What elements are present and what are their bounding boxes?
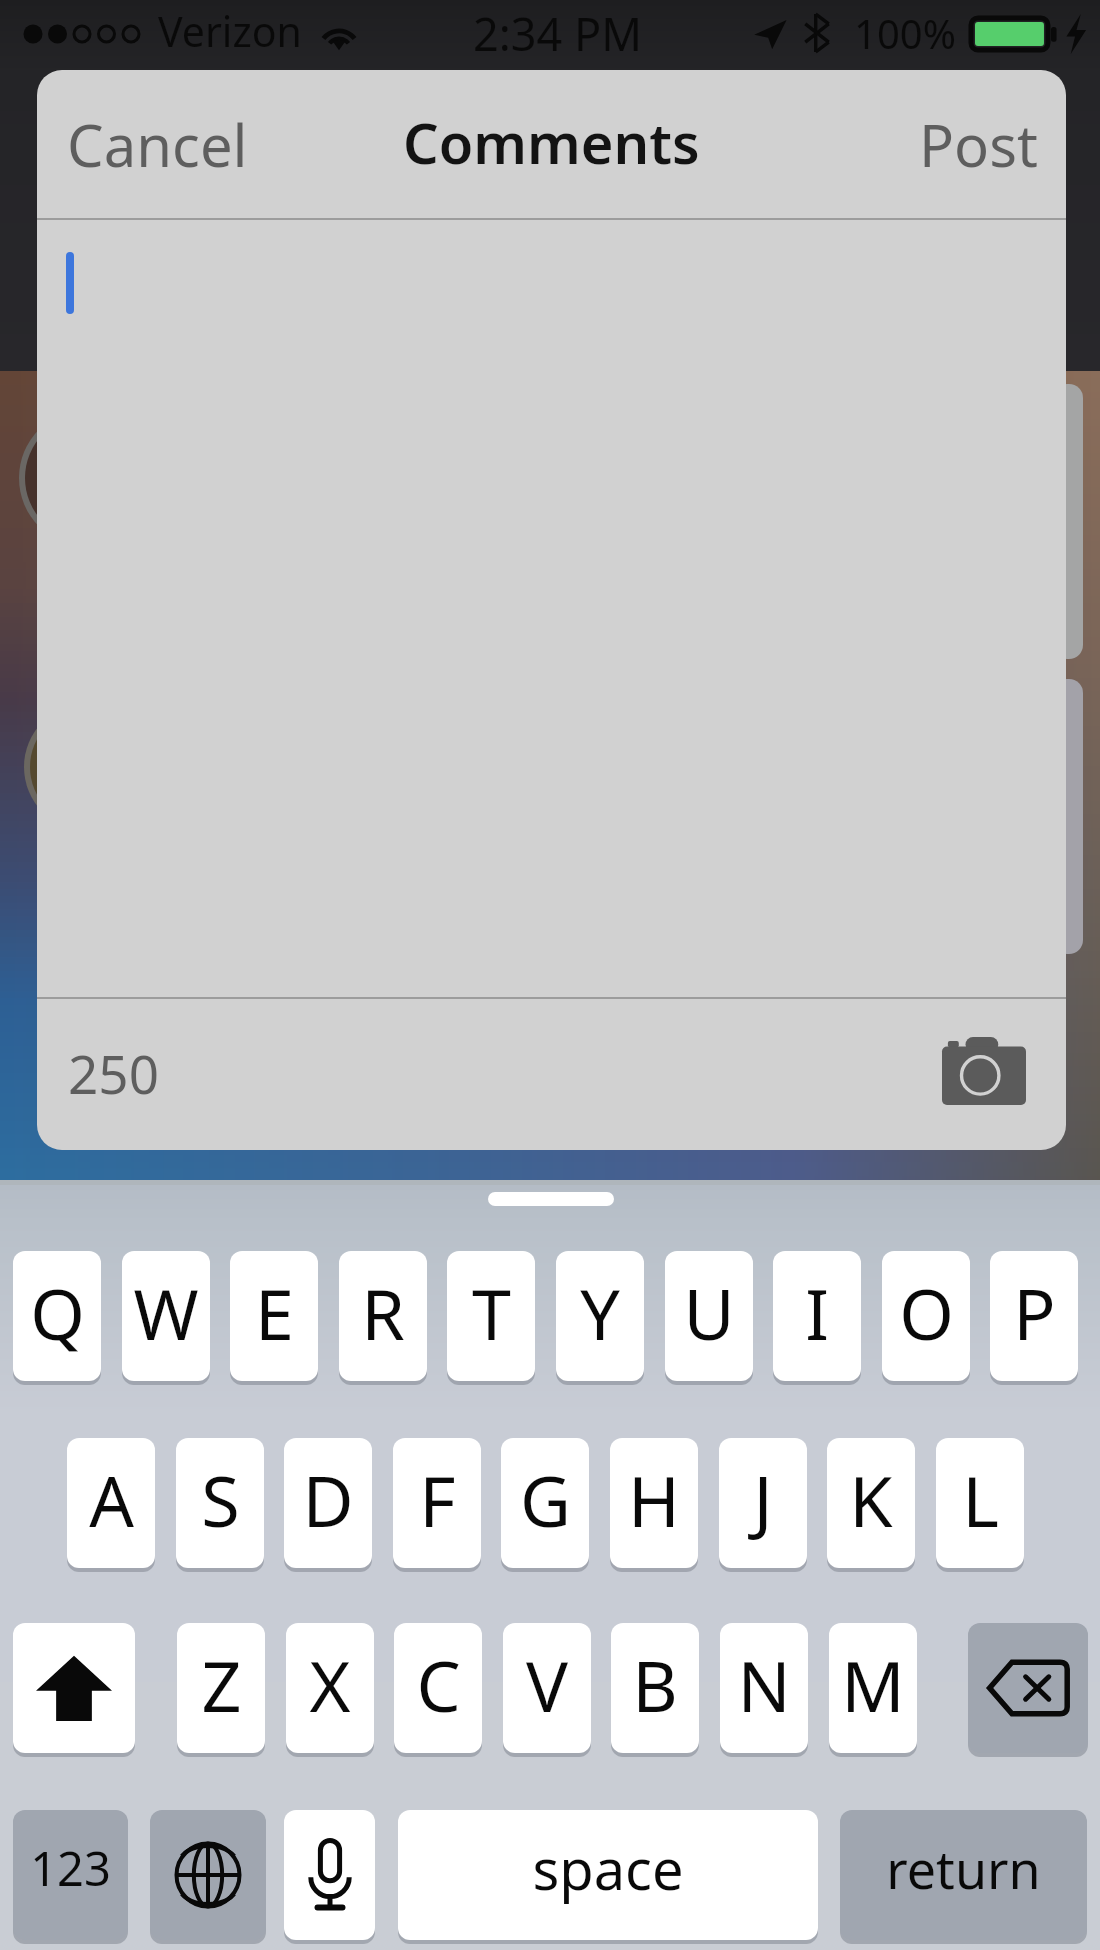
button[interactable]: Shift <box>13 1623 135 1753</box>
button[interactable]: Add photo <box>932 1027 1036 1115</box>
staticText: Comments <box>403 104 700 180</box>
staticText: E <box>255 1265 294 1360</box>
staticText: Z <box>201 1637 242 1732</box>
button[interactable]: U <box>665 1251 753 1381</box>
staticText: V <box>526 1637 568 1732</box>
button[interactable]: A <box>67 1438 155 1568</box>
staticText: P <box>1013 1265 1056 1360</box>
staticText: D <box>302 1452 354 1547</box>
button[interactable]: I <box>773 1251 861 1381</box>
button[interactable]: Post <box>895 83 1066 206</box>
staticText: O <box>899 1265 954 1360</box>
button[interactable]: M <box>829 1623 917 1753</box>
staticText: A <box>89 1452 134 1547</box>
staticText: Verizon <box>158 3 302 59</box>
staticText: Q <box>30 1265 85 1360</box>
button[interactable]: 123 <box>13 1810 128 1940</box>
button[interactable]: E <box>230 1251 318 1381</box>
staticText: return <box>886 1833 1041 1904</box>
staticText: C <box>416 1637 461 1732</box>
button[interactable]: N <box>720 1623 808 1753</box>
staticText: Post <box>919 105 1038 184</box>
staticText: L <box>962 1452 999 1547</box>
button[interactable]: F <box>393 1438 481 1568</box>
button[interactable]: return <box>840 1810 1087 1940</box>
staticText: S <box>201 1452 240 1547</box>
button[interactable]: W <box>122 1251 210 1381</box>
button[interactable]: Q <box>13 1251 101 1381</box>
staticText: Y <box>580 1265 620 1360</box>
staticText: 123 <box>30 1836 111 1900</box>
button[interactable]: O <box>882 1251 970 1381</box>
button[interactable]: Dictation <box>284 1810 375 1940</box>
staticText: N <box>737 1637 791 1732</box>
staticText: F <box>419 1452 456 1547</box>
button[interactable]: Cancel <box>37 83 272 206</box>
staticText: space <box>532 1830 684 1906</box>
button[interactable]: X <box>286 1623 374 1753</box>
button[interactable]: Y <box>556 1251 644 1381</box>
button[interactable]: T <box>447 1251 535 1381</box>
button[interactable]: Next keyboard <box>150 1810 266 1940</box>
staticText: I <box>805 1265 829 1360</box>
button[interactable]: R <box>339 1251 427 1381</box>
staticText: G <box>520 1452 571 1547</box>
staticText: R <box>361 1265 405 1360</box>
button[interactable] <box>37 220 1066 997</box>
button[interactable]: Backspace <box>968 1623 1088 1753</box>
button[interactable]: J <box>719 1438 807 1568</box>
staticText: X <box>309 1637 351 1732</box>
button[interactable]: V <box>503 1623 591 1753</box>
button[interactable]: Z <box>177 1623 265 1753</box>
button[interactable]: S <box>176 1438 264 1568</box>
staticText: T <box>472 1265 511 1360</box>
staticText: U <box>683 1265 735 1360</box>
button[interactable]: H <box>610 1438 698 1568</box>
button[interactable]: L <box>936 1438 1024 1568</box>
staticText: K <box>849 1452 893 1547</box>
staticText: H <box>628 1452 680 1547</box>
button[interactable]: P <box>990 1251 1078 1381</box>
button[interactable]: K <box>827 1438 915 1568</box>
staticText: 100% <box>854 6 956 60</box>
button[interactable]: space <box>398 1810 818 1940</box>
button[interactable]: B <box>611 1623 699 1753</box>
staticText: B <box>632 1637 678 1732</box>
staticText: W <box>133 1265 199 1360</box>
button[interactable]: C <box>394 1623 482 1753</box>
button[interactable]: D <box>284 1438 372 1568</box>
button[interactable]: G <box>501 1438 589 1568</box>
staticText: M <box>841 1637 905 1732</box>
staticText: Cancel <box>67 105 248 184</box>
staticText: J <box>753 1452 773 1547</box>
staticText: 250 <box>68 1037 159 1109</box>
staticText: 2:34 PM <box>473 3 643 64</box>
